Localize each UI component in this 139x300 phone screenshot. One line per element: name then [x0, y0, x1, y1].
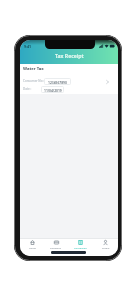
staticText: Tax Receipt [55, 52, 84, 59]
staticText: Consumer No : [23, 79, 45, 83]
staticText: Date : [23, 87, 32, 91]
button[interactable]: Date : [20, 85, 118, 93]
staticText: Tax Receipt [74, 246, 87, 249]
staticText: 11/04/2019 [44, 88, 62, 92]
staticText: Profile [102, 246, 110, 249]
staticText: Payments [50, 246, 62, 249]
staticText: Water Tax [23, 66, 44, 72]
staticText: Home [29, 246, 36, 249]
button[interactable]: Consumer No : [20, 77, 118, 86]
button[interactable]: Payments [44, 238, 68, 256]
button[interactable]: Tax Receipt [68, 238, 93, 256]
button[interactable]: Home [20, 238, 44, 256]
staticText: 1234567890 [48, 80, 67, 84]
staticText: 9:41 [24, 44, 32, 49]
button[interactable]: Profile [93, 238, 118, 256]
